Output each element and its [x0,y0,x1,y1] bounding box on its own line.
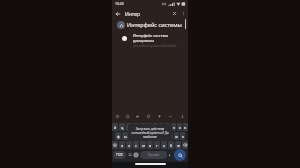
button[interactable]: Settings [115,114,120,119]
button[interactable]: щ [165,123,170,131]
button[interactable]: р [150,132,155,140]
staticText: ?123 [116,153,123,157]
staticText: я [121,143,124,148]
button[interactable]: г [153,123,158,131]
staticText: Запускать действия com.android.systemui?… [130,127,170,139]
button[interactable]: ь [161,141,167,149]
staticText: е [142,125,144,130]
staticText: ю [177,143,180,148]
staticText: ч [128,143,131,148]
button[interactable]: к [133,123,139,131]
staticText: л [163,134,166,139]
staticText: com.android.systemui.DemoMode [133,44,177,48]
staticText: доморежим [133,38,155,43]
button[interactable]: э [180,132,185,140]
button[interactable]: Search [174,149,186,161]
button[interactable]: м [140,141,146,149]
staticText: Интер [125,11,140,18]
button[interactable]: т [154,141,160,149]
button[interactable]: Symbols [113,151,126,159]
staticText: г [155,125,157,130]
button[interactable]: с [133,141,139,149]
button[interactable]: а [136,132,142,140]
button[interactable]: ы [122,132,128,140]
staticText: т [156,143,158,148]
button[interactable]: More options [181,11,186,16]
staticText: ц [121,125,124,130]
button[interactable]: б [168,141,174,149]
button[interactable]: Back [115,11,121,17]
staticText: ъ [184,125,187,130]
staticText: ж [175,134,178,139]
staticText: й [114,125,117,130]
staticText: н [148,125,151,130]
staticText: м [142,143,145,148]
button[interactable]: Voice input [180,114,185,119]
button[interactable]: ж [174,132,179,140]
staticText: ь [163,143,165,148]
button[interactable]: Stickers [125,114,130,119]
button[interactable]: п [143,132,149,140]
button[interactable]: ф [115,132,121,140]
staticText: к [135,125,137,130]
staticText: з [173,125,175,130]
button[interactable]: Translate [157,114,162,119]
staticText: э [182,134,184,139]
button[interactable]: Интерфейс системы [112,30,188,47]
button[interactable]: Change language [133,152,139,158]
button[interactable]: Expand [168,114,173,119]
button[interactable]: ц [119,123,125,131]
button[interactable]: е [140,123,146,131]
button[interactable]: и [147,141,153,149]
button[interactable]: з [171,123,176,131]
staticText: п [145,134,148,139]
button[interactable]: Comma [127,152,132,157]
button[interactable]: н [147,123,152,131]
button[interactable]: в [129,132,135,140]
staticText: Интерфейс системы [133,33,169,38]
button[interactable]: ш [159,123,164,131]
button[interactable]: Backspace [182,141,188,149]
button[interactable]: х [177,123,182,131]
button[interactable]: л [162,132,167,140]
staticText: р [151,134,154,139]
button[interactable]: ч [126,141,132,149]
button[interactable]: й [112,123,118,131]
staticText: 10:26 [115,1,124,6]
button[interactable]: GIF [135,114,140,119]
button[interactable]: у [126,123,132,131]
button[interactable]: Space [140,151,167,159]
button[interactable]: Clear [172,11,177,16]
button[interactable]: о [156,132,161,140]
staticText: х [179,125,181,130]
staticText: Интерфейс системы [127,21,182,29]
button[interactable]: д [168,132,173,140]
staticText: ф [117,134,120,139]
staticText: ш [160,125,164,130]
staticText: и [149,143,152,148]
button[interactable]: Clipboard [146,114,151,119]
button[interactable]: я [119,141,125,149]
staticText: Русский [148,153,160,157]
staticText: с [135,143,137,148]
staticText: ы [124,134,127,139]
staticText: б [170,143,173,148]
button[interactable]: Period [167,152,172,157]
button[interactable]: ъ [183,123,188,131]
button[interactable]: ю [175,141,181,149]
button[interactable]: Shift [112,141,118,149]
